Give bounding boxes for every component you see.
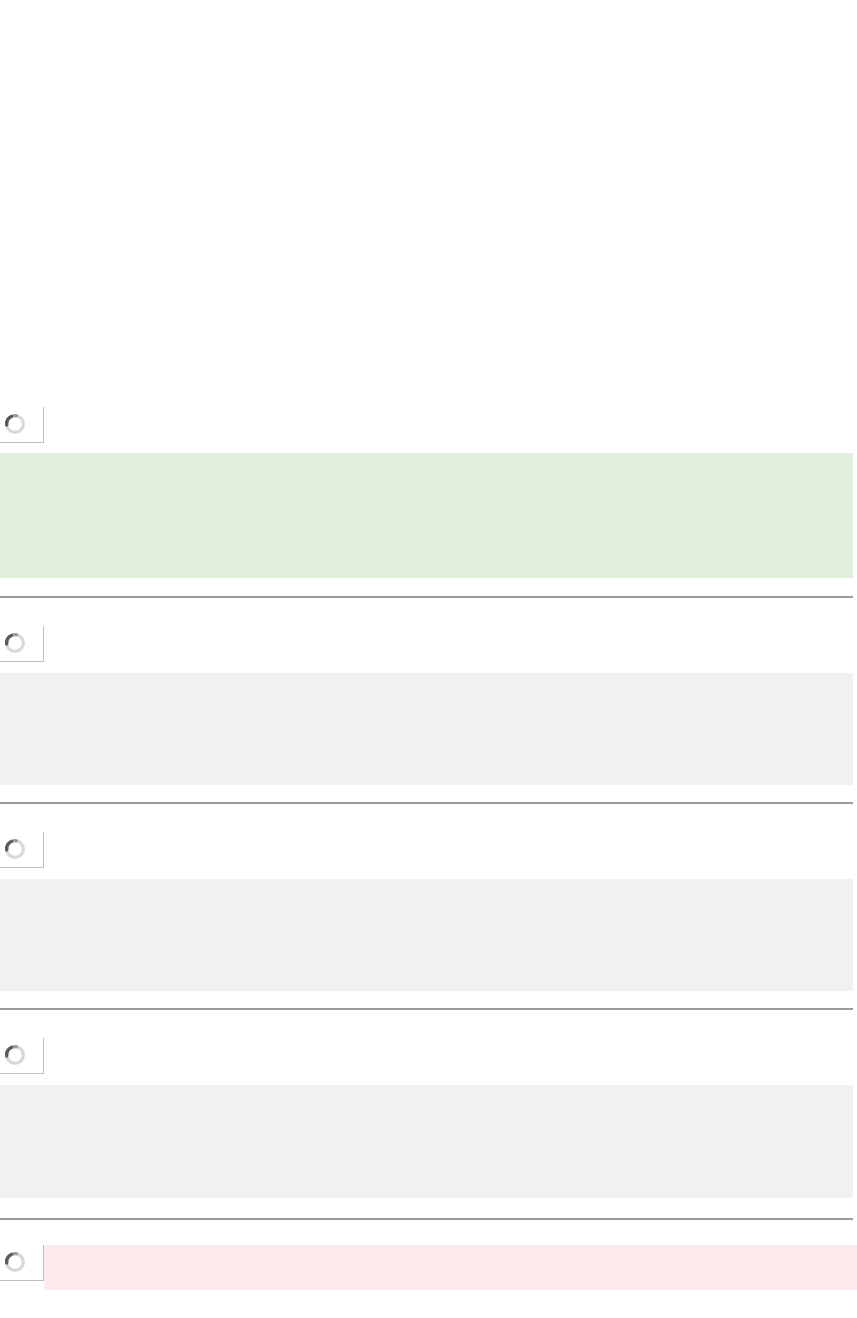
button[interactable]: Loading <box>0 407 44 443</box>
button[interactable]: Loading <box>0 1038 44 1074</box>
button[interactable]: Loading <box>0 1245 44 1281</box>
button[interactable]: Loading <box>0 832 44 868</box>
button[interactable]: Loading <box>0 626 44 662</box>
